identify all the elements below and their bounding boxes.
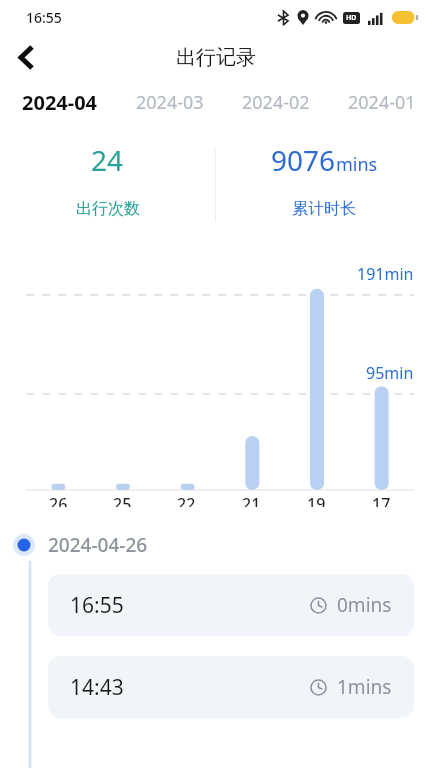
staticText: 19 bbox=[307, 493, 326, 507]
staticText: 24 bbox=[91, 141, 124, 179]
staticText: 2024-04-26 bbox=[48, 532, 148, 558]
staticText: 191min bbox=[357, 263, 414, 285]
button[interactable]: 2024-04 bbox=[22, 84, 98, 121]
staticText: mins bbox=[336, 152, 378, 177]
staticText: 14:43 bbox=[70, 673, 124, 702]
staticText: 出行记录 bbox=[176, 45, 256, 70]
staticText: 2024-04 bbox=[22, 89, 98, 116]
button[interactable]: 2024-01 bbox=[348, 85, 416, 120]
staticText: 22 bbox=[177, 493, 196, 507]
button[interactable]: 2024-03 bbox=[136, 85, 204, 120]
staticText: 0mins bbox=[337, 592, 392, 618]
button[interactable]: 16:55 bbox=[48, 574, 414, 636]
staticText: 出行次数 bbox=[76, 199, 140, 219]
staticText: 95min bbox=[366, 362, 414, 384]
button[interactable]: Back bbox=[0, 34, 52, 80]
staticText: 9076 bbox=[271, 141, 336, 179]
staticText: HD bbox=[346, 13, 357, 23]
staticText: 累计时长 bbox=[292, 199, 356, 219]
staticText: 16:55 bbox=[26, 8, 62, 27]
button[interactable]: 2024-02 bbox=[242, 85, 310, 120]
staticText: 1mins bbox=[337, 674, 392, 700]
staticText: 26 bbox=[49, 493, 68, 507]
staticText: 2024-01 bbox=[348, 90, 416, 115]
staticText: 2024-02 bbox=[242, 90, 310, 115]
button[interactable]: 14:43 bbox=[48, 656, 414, 718]
staticText: 17 bbox=[372, 493, 391, 507]
staticText: 25 bbox=[113, 493, 132, 507]
staticText: 21 bbox=[242, 493, 261, 507]
staticText: 2024-03 bbox=[136, 90, 204, 115]
staticText: 16:55 bbox=[70, 591, 124, 620]
